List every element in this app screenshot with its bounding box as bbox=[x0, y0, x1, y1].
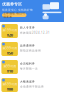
staticText: 领券更省心 省钱购好物 bbox=[2, 8, 33, 12]
button[interactable]: 立即领取 每日可领新券 bbox=[2, 13, 26, 17]
staticText: 大额满减券 bbox=[20, 80, 35, 83]
button[interactable]: 满99可用 bbox=[0, 60, 64, 74]
button[interactable]: 满399可用 bbox=[0, 42, 64, 56]
staticText: 会员福利券 bbox=[20, 62, 35, 65]
staticText: ¥50 bbox=[7, 50, 13, 56]
staticText: 满699可用 bbox=[2, 82, 17, 86]
staticText: 立即领取 每日可领新券 bbox=[3, 12, 25, 18]
staticText: 满99可用 bbox=[3, 64, 16, 68]
staticText: 有效期至2024.12.31 bbox=[20, 31, 50, 34]
staticText: 优惠券专区 bbox=[2, 2, 22, 7]
staticText: ¥10 bbox=[7, 68, 13, 74]
staticText: 每月限领一次 bbox=[20, 67, 38, 70]
staticText: ¥20 bbox=[7, 32, 13, 38]
staticText: ¥88 bbox=[7, 86, 13, 92]
button[interactable]: 满199可用 bbox=[0, 24, 64, 38]
staticText: 满399可用 bbox=[2, 46, 17, 50]
staticText: 品类通用券 bbox=[20, 44, 35, 47]
staticText: 全场通用不限品类 bbox=[20, 85, 44, 88]
button[interactable]: 满699可用 bbox=[0, 78, 64, 92]
staticText: 新人专享券 bbox=[20, 26, 35, 29]
staticText: 限指定商品使用 bbox=[20, 49, 41, 52]
staticText: 满199可用 bbox=[2, 28, 17, 32]
